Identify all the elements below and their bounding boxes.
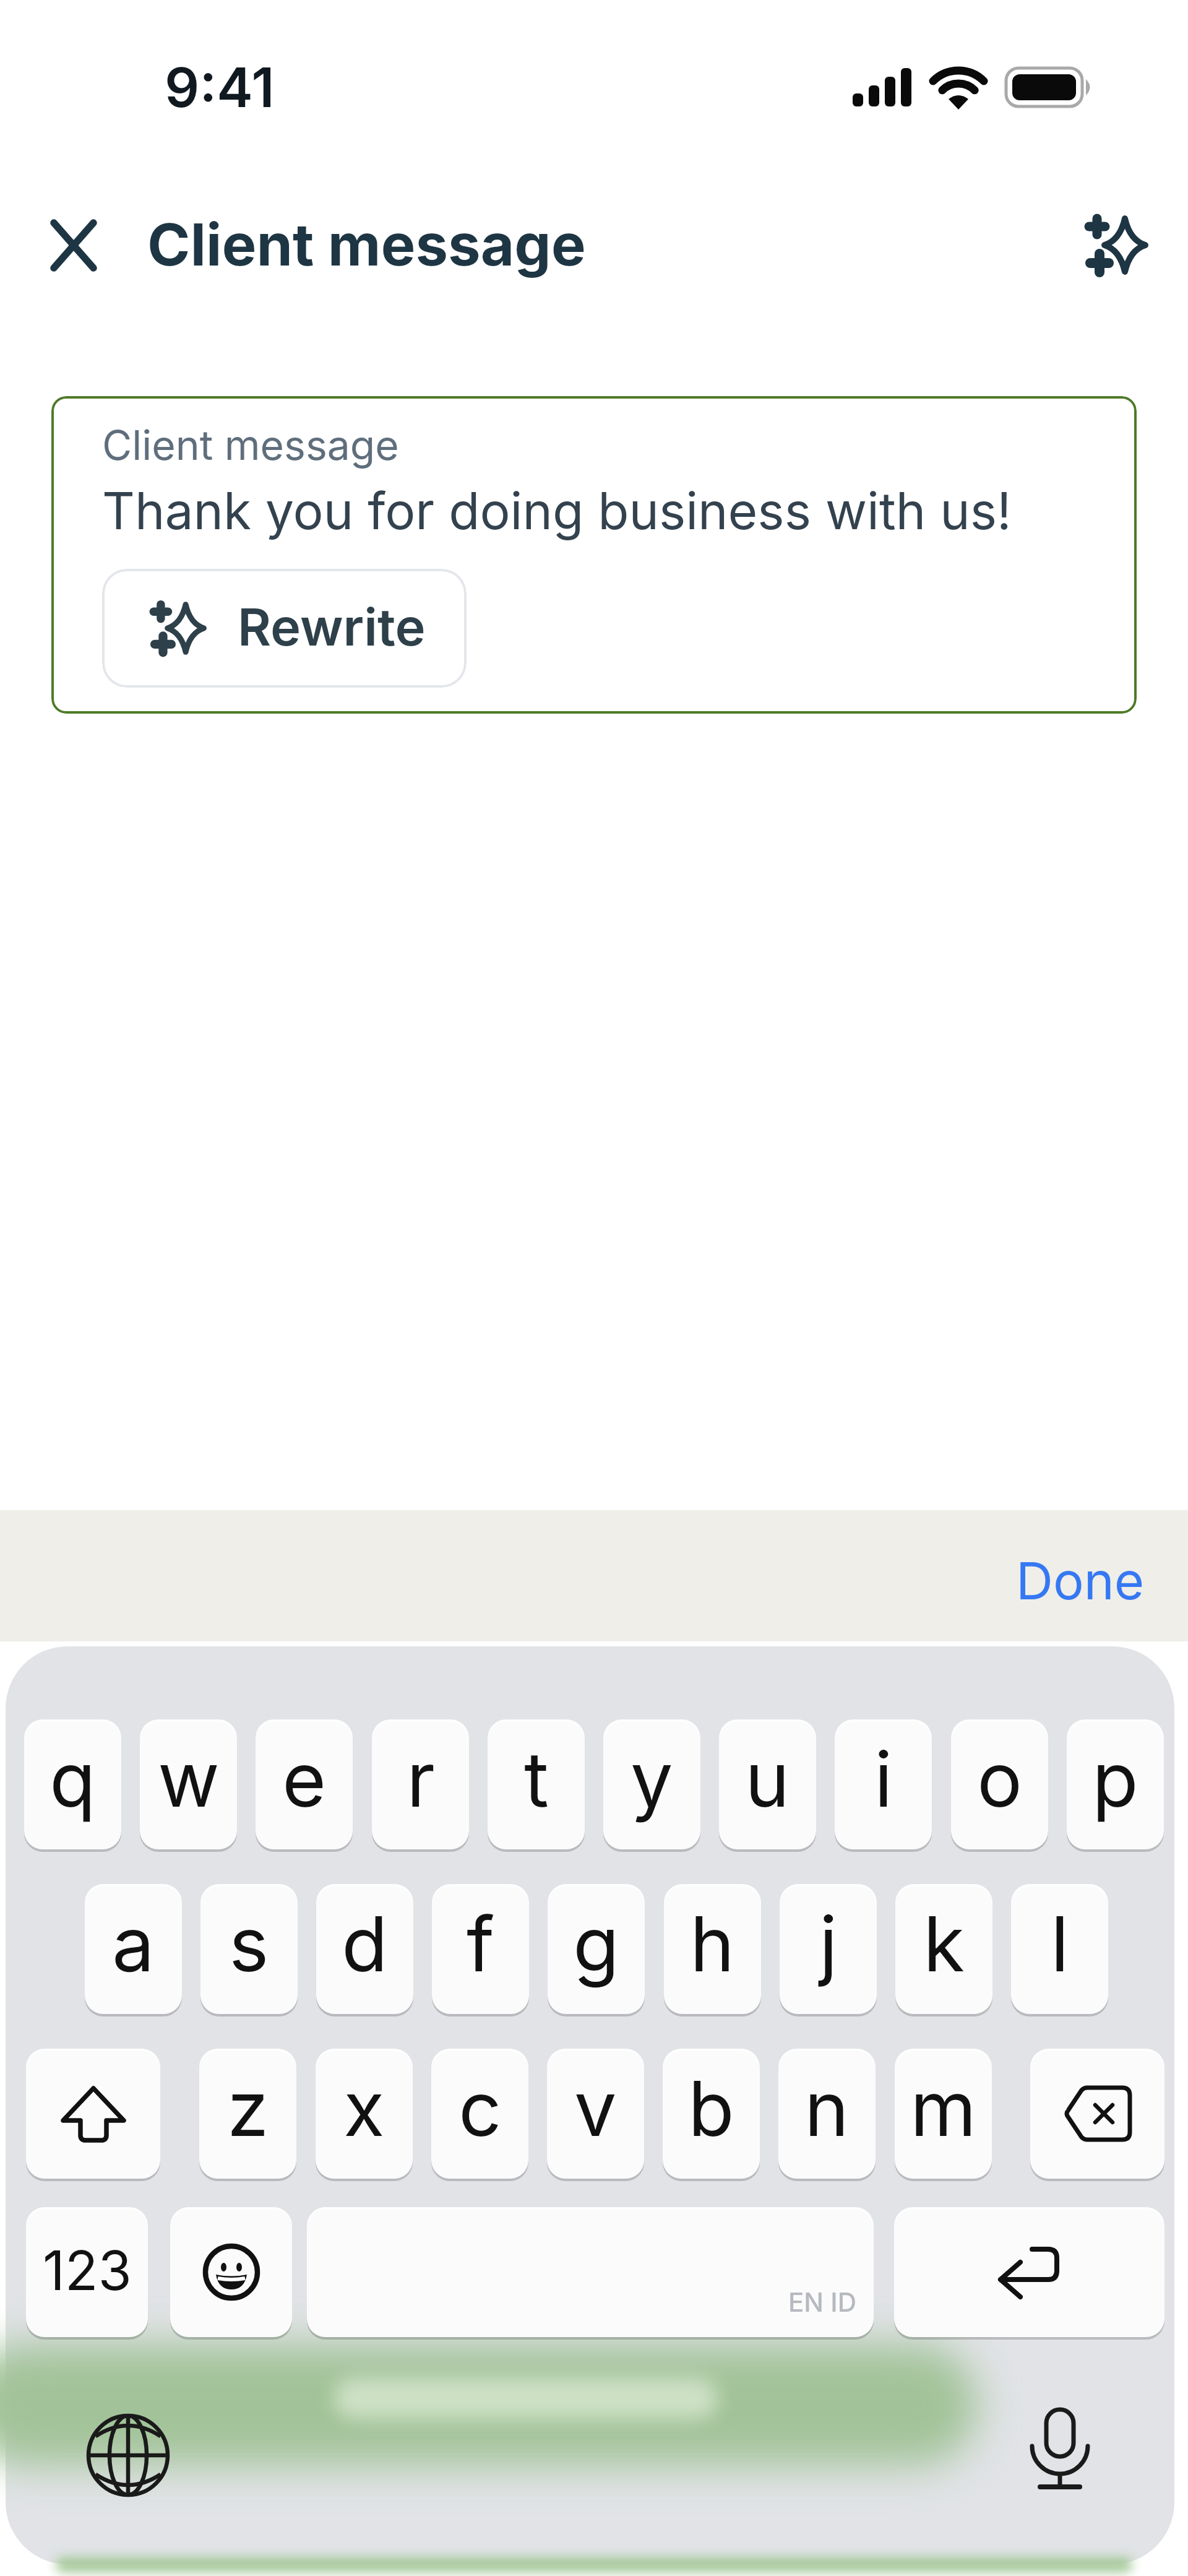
staticText: t <box>524 1734 549 1825</box>
staticText: s <box>229 1898 269 1990</box>
staticText: w <box>158 1734 220 1825</box>
button[interactable]: g <box>548 1884 645 2014</box>
staticText: r <box>407 1734 435 1825</box>
staticText: g <box>573 1898 619 1990</box>
button[interactable]: q <box>24 1719 121 1849</box>
staticText: c <box>458 2063 502 2155</box>
button[interactable]: x <box>316 2049 413 2179</box>
button[interactable] <box>85 2412 171 2499</box>
button[interactable]: f <box>432 1884 529 2014</box>
button[interactable] <box>26 2049 160 2179</box>
staticText: e <box>282 1734 327 1825</box>
button[interactable]: o <box>951 1719 1048 1849</box>
button[interactable]: w <box>140 1719 237 1849</box>
button[interactable]: 123 <box>26 2207 148 2337</box>
staticText: f <box>467 1898 495 1990</box>
staticText: d <box>342 1898 388 1990</box>
staticText: h <box>690 1898 735 1990</box>
staticText: EN ID <box>788 2286 857 2318</box>
staticText: m <box>910 2063 976 2155</box>
staticText: u <box>745 1734 790 1825</box>
button[interactable]: n <box>778 2049 876 2179</box>
button[interactable] <box>1020 2405 1100 2497</box>
button[interactable]: i <box>835 1719 932 1849</box>
button[interactable]: e <box>256 1719 353 1849</box>
button[interactable]: v <box>547 2049 644 2179</box>
button[interactable]: y <box>603 1719 700 1849</box>
button[interactable]: k <box>895 1884 992 2014</box>
staticText: Client message <box>102 420 399 470</box>
staticText: j <box>819 1898 838 1990</box>
button[interactable]: Rewrite <box>102 569 467 688</box>
button[interactable]: u <box>719 1719 816 1849</box>
staticText: l <box>1051 1898 1069 1990</box>
staticText: a <box>112 1898 155 1990</box>
button[interactable]: a <box>85 1884 182 2014</box>
button[interactable]: t <box>488 1719 585 1849</box>
staticText: b <box>688 2063 734 2155</box>
staticText: n <box>804 2063 850 2155</box>
staticText: y <box>631 1734 673 1825</box>
button[interactable]: c <box>431 2049 528 2179</box>
staticText: q <box>49 1734 96 1825</box>
staticText: z <box>227 2063 269 2155</box>
button[interactable]: p <box>1067 1719 1164 1849</box>
button[interactable]: z <box>199 2049 296 2179</box>
button[interactable]: EN ID <box>307 2207 874 2337</box>
staticText: Rewrite <box>238 596 426 658</box>
staticText: o <box>977 1734 1023 1825</box>
button[interactable]: j <box>780 1884 877 2014</box>
staticText: i <box>874 1734 893 1825</box>
staticText: 9:41 <box>165 54 275 120</box>
button[interactable]: b <box>663 2049 760 2179</box>
button[interactable]: d <box>316 1884 413 2014</box>
button[interactable] <box>51 396 1137 714</box>
staticText: Done <box>1016 1550 1145 1612</box>
button[interactable] <box>45 215 104 275</box>
staticText: 123 <box>43 2237 132 2303</box>
button[interactable] <box>1030 2049 1164 2179</box>
staticText: k <box>923 1898 965 1990</box>
button[interactable]: Done <box>990 1535 1163 1622</box>
button[interactable] <box>1079 210 1148 280</box>
button[interactable]: s <box>200 1884 298 2014</box>
staticText: x <box>343 2063 385 2155</box>
button[interactable]: r <box>372 1719 469 1849</box>
staticText: Thank you for doing business with us! <box>102 480 1012 542</box>
button[interactable]: h <box>664 1884 761 2014</box>
button[interactable]: l <box>1011 1884 1108 2014</box>
button[interactable] <box>170 2207 292 2337</box>
staticText: v <box>574 2063 617 2155</box>
button[interactable] <box>894 2207 1164 2337</box>
staticText: p <box>1092 1734 1138 1825</box>
staticText: Client message <box>147 209 586 280</box>
button[interactable]: m <box>895 2049 992 2179</box>
